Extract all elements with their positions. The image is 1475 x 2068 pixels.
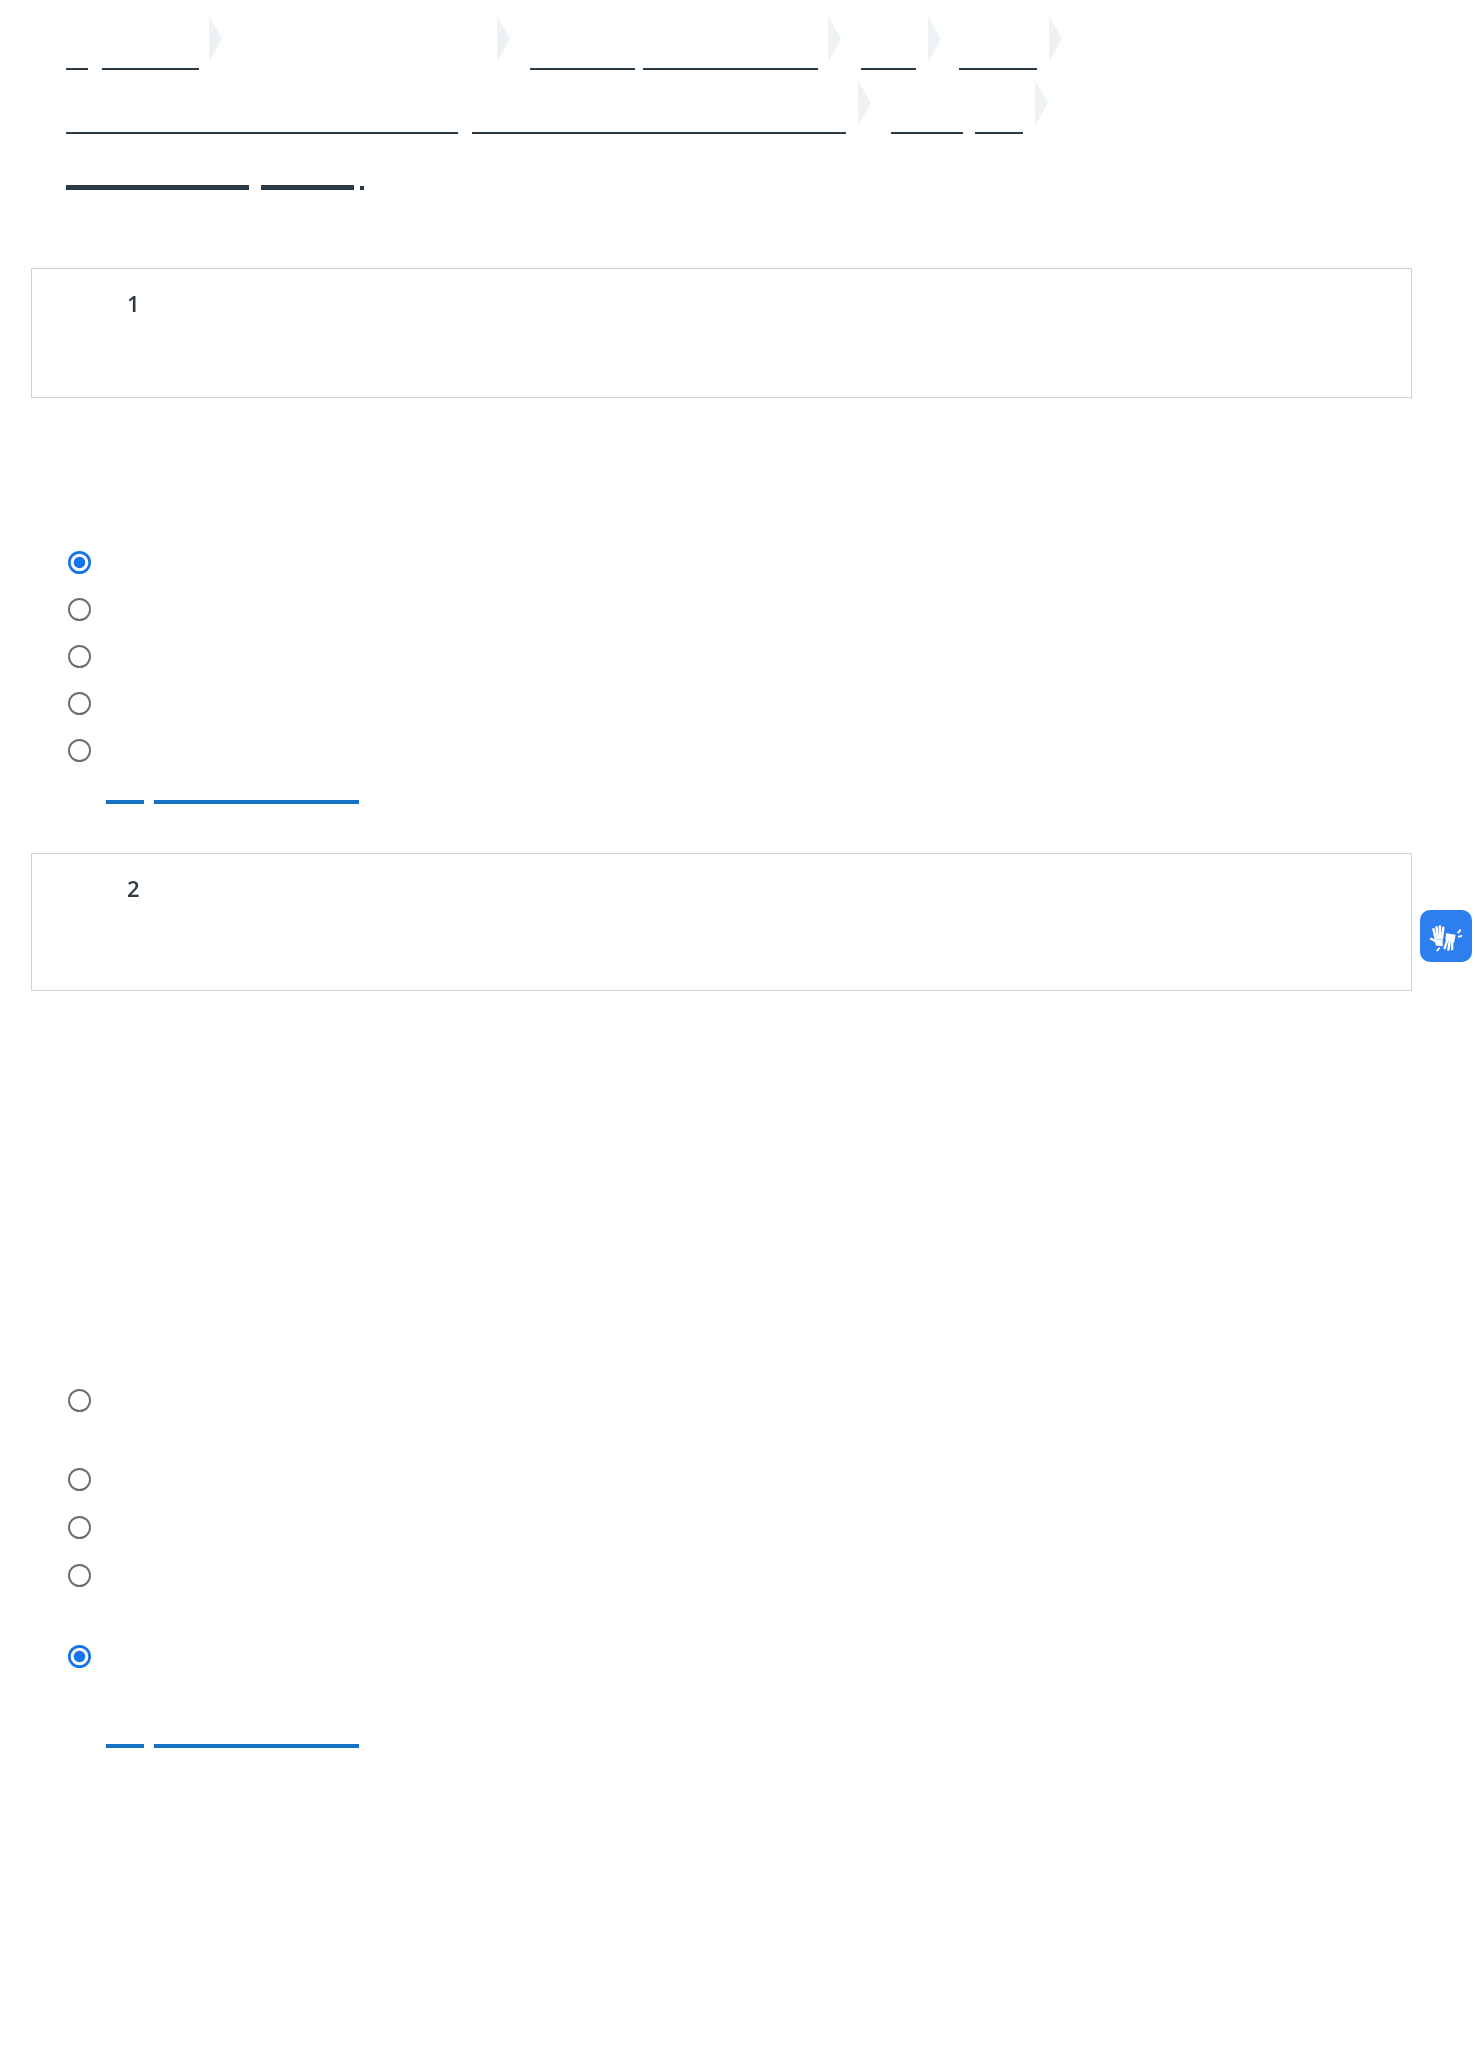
button[interactable]: Option [68,1468,91,1491]
staticText: 2 [127,873,140,903]
button[interactable]: Option [0,598,1475,621]
button[interactable]: Option [0,739,1475,762]
button[interactable]: Option [68,1564,91,1587]
button[interactable]: Option [0,692,1475,715]
button[interactable] [530,68,818,70]
button[interactable] [66,68,199,70]
button[interactable]: Selected option [0,551,1475,574]
button[interactable]: 2 [31,853,1412,991]
button[interactable]: Selected option [68,551,91,574]
button[interactable]: Selected option [0,1645,1475,1668]
button[interactable]: Option [68,1389,91,1412]
button[interactable]: Option [0,1389,1475,1412]
staticText: 1 [127,288,140,318]
button[interactable]: Option [68,1516,91,1539]
button[interactable]: Sign language accessibility [1420,910,1472,962]
button[interactable]: 1 [31,268,1412,398]
button[interactable]: Option [0,645,1475,668]
button[interactable]: Option [68,645,91,668]
button[interactable]: Selected option [68,1645,91,1668]
button[interactable]: Option [68,598,91,621]
button[interactable] [0,800,1475,804]
button[interactable]: Option [0,1564,1475,1587]
button[interactable] [66,185,354,190]
button[interactable]: Option [0,1468,1475,1491]
button[interactable]: Option [68,692,91,715]
button[interactable] [0,1744,1475,1748]
button[interactable]: Option [0,1516,1475,1539]
button[interactable]: Option [68,739,91,762]
